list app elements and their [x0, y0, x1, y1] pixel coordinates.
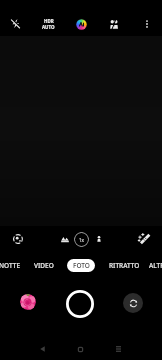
button[interactable]: Take photo: [66, 290, 94, 318]
staticText: RITRATTO: [109, 261, 140, 270]
button[interactable]: Filters: [134, 229, 153, 248]
button[interactable]: FOTO: [67, 259, 95, 272]
button[interactable]: AI camera assist: [70, 13, 92, 35]
button[interactable]: Recents: [110, 341, 126, 357]
button[interactable]: ALTRO: [149, 259, 162, 272]
staticText: ALTRO: [149, 261, 162, 270]
staticText: HDR: [44, 18, 54, 24]
button[interactable]: Home: [72, 341, 88, 357]
staticText: NOTTE: [0, 261, 21, 270]
button[interactable]: 1x: [74, 232, 89, 247]
button[interactable]: Gallery: [20, 294, 36, 310]
button[interactable]: Scene detection: [8, 229, 28, 249]
button[interactable]: More options: [136, 13, 157, 34]
staticText: VIDEO: [34, 261, 54, 270]
button[interactable]: Back: [34, 341, 50, 357]
button[interactable]: VIDEO: [34, 259, 54, 272]
button[interactable]: Flash off: [5, 13, 26, 34]
button[interactable]: HDR: [37, 13, 59, 35]
button[interactable]: Telephoto lens: [91, 231, 106, 246]
button[interactable]: NOTTE: [0, 259, 21, 272]
staticText: FOTO: [73, 261, 90, 270]
staticText: AUTO: [42, 24, 55, 30]
button[interactable]: Switch camera: [123, 293, 143, 313]
staticText: 1x: [79, 237, 85, 243]
button[interactable]: RITRATTO: [109, 259, 140, 272]
button[interactable]: Scene optimizer: [103, 13, 125, 35]
button[interactable]: Ultra wide lens: [56, 230, 74, 248]
